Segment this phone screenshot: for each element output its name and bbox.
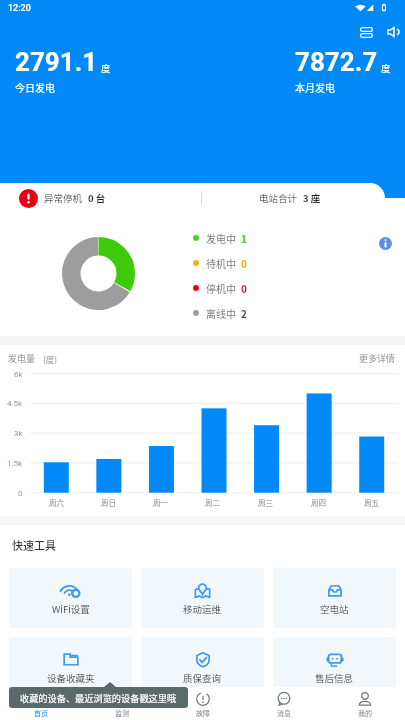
staticText: 3 座 [303,191,321,205]
staticText: 空电站 [320,602,349,616]
staticText: 周日 [101,497,116,508]
button[interactable]: 发电中 [193,225,247,250]
staticText: 发电中 [206,231,236,245]
staticText: 周二 [205,497,220,508]
button[interactable]: 空电站 [273,568,396,628]
staticText: 首页 [34,708,48,718]
staticText: 收藏的设备、最近浏览的设备戳这里哦 [20,691,177,704]
staticText: 度 [381,61,391,75]
button[interactable]: 离线中 [193,300,247,325]
staticText: 移动运维 [183,602,222,616]
staticText: 待机中 [206,256,236,270]
staticText: 7872.7 [295,47,378,77]
staticText: 周五 [364,497,379,508]
button[interactable]: 我的 [324,687,405,720]
button[interactable]: Switch layout [353,19,379,45]
staticText: 电站合计 [259,191,298,205]
button[interactable]: 首页 [0,687,81,720]
staticText: 故障 [196,708,210,718]
button[interactable]: 设备收藏夹 [9,637,132,697]
staticText: 6k [14,370,23,379]
staticText: 更多详情 [359,352,396,365]
button[interactable]: 停机中 [193,275,247,300]
staticText: 停机中 [206,281,236,295]
staticText: 离线中 [206,306,236,320]
staticText: 今日发电 [15,80,55,94]
staticText: 周六 [49,497,64,508]
staticText: 2791.1 [15,47,98,77]
button[interactable]: Announcements [380,19,405,45]
staticText: 售后信息 [315,671,354,685]
staticText: 4.5k [7,399,23,408]
staticText: 0 [241,281,247,295]
staticText: WiFi设置 [52,602,90,616]
staticText: 快速工具 [12,537,56,553]
staticText: 我的 [358,708,372,718]
staticText: 0 [18,489,23,498]
staticText: 周四 [311,497,326,508]
button[interactable]: 待机中 [193,250,247,275]
staticText: 监测 [115,708,129,718]
button[interactable]: 监测 [81,687,162,720]
staticText: 1.5k [7,459,23,468]
staticText: 2 [241,306,247,320]
button[interactable]: 售后信息 [273,637,396,697]
staticText: (度) [43,353,58,365]
button[interactable]: 消息 [243,687,324,720]
staticText: 本月发电 [295,80,335,94]
button[interactable]: 移动运维 [141,568,264,628]
staticText: 设备收藏夹 [47,671,95,685]
button[interactable]: 异常停机 [0,183,385,213]
staticText: 异常停机 [44,191,83,205]
staticText: 12:20 [8,3,31,14]
button[interactable]: 故障 [162,687,243,720]
staticText: 质保查询 [183,671,222,685]
staticText: 3k [14,429,23,438]
button[interactable]: WiFi设置 [9,568,132,628]
staticText: 0 [241,256,247,270]
staticText: 发电量 [8,352,36,365]
staticText: 周三 [258,497,273,508]
staticText: 周一 [153,497,168,508]
staticText: 消息 [277,708,291,718]
staticText: 1 [241,231,247,245]
staticText: 0 台 [88,191,106,205]
button[interactable]: 更多详情 [359,352,396,365]
button[interactable]: Info [373,231,398,256]
button[interactable]: 质保查询 [141,637,264,697]
staticText: 度 [101,61,111,75]
button[interactable]: 收藏的设备、最近浏览的设备戳这里哦 [9,687,188,708]
